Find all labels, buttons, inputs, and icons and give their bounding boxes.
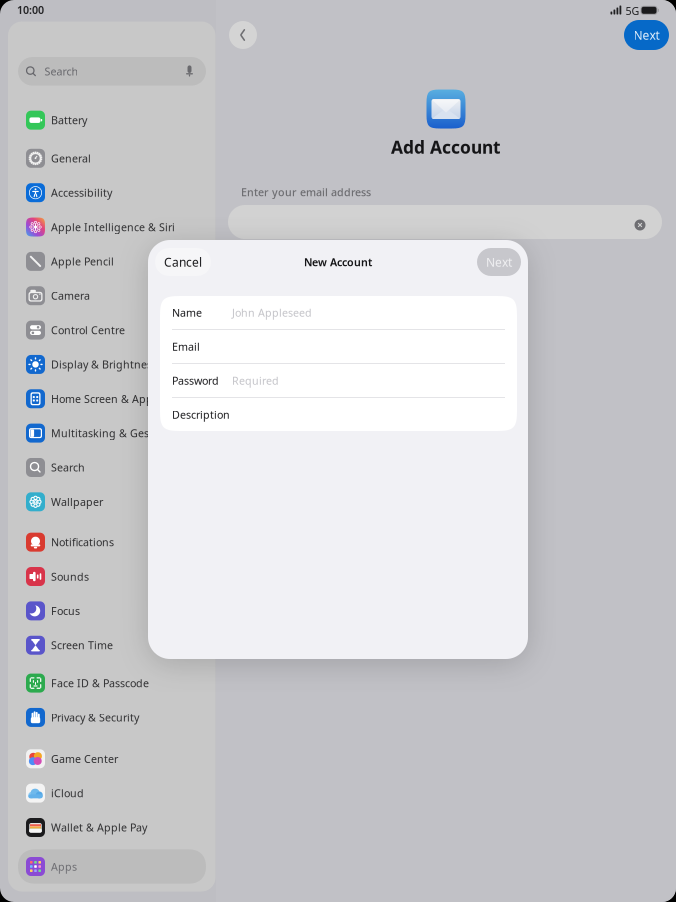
staticText: Control Centre [51, 323, 125, 337]
button[interactable]: Accessibility [18, 175, 206, 210]
button[interactable]: General [18, 141, 206, 176]
button[interactable]: Battery [18, 103, 206, 137]
staticText: Display & Brightness [51, 357, 157, 371]
button[interactable]: Email [160, 330, 517, 363]
staticText: Add Account [391, 135, 501, 158]
staticText: Required [232, 373, 279, 388]
staticText: Focus [51, 604, 80, 618]
button[interactable]: Search [18, 450, 206, 485]
button[interactable]: Sounds [18, 559, 206, 594]
button[interactable]: Next [624, 20, 669, 50]
button[interactable]: Description [160, 398, 517, 431]
staticText: Screen Time [51, 638, 113, 652]
button[interactable]: Multitasking & Gestures [18, 416, 206, 450]
staticText: Multitasking & Gestures [51, 426, 175, 440]
staticText: Apple Intelligence & Siri [51, 220, 175, 234]
button[interactable]: Face ID & Passcode [18, 666, 206, 700]
staticText: Game Center [51, 752, 118, 766]
button[interactable]: Cancel [155, 248, 211, 276]
staticText: Next [486, 254, 512, 270]
button[interactable]: Notifications [18, 525, 206, 559]
button[interactable]: Game Center [18, 742, 206, 776]
staticText: Camera [51, 289, 90, 303]
staticText: Privacy & Security [51, 710, 139, 724]
staticText: Battery [51, 113, 87, 127]
button[interactable]: Apps [18, 849, 206, 884]
button[interactable]: Focus [18, 594, 206, 628]
staticText: Sounds [51, 569, 89, 584]
staticText: 5G [625, 4, 639, 18]
staticText: Email [172, 339, 200, 354]
staticText: General [51, 151, 91, 165]
button[interactable]: Back [229, 21, 257, 49]
staticText: Accessibility [51, 186, 112, 200]
button[interactable]: Home Screen & App Library [18, 382, 206, 416]
staticText: Notifications [51, 535, 114, 549]
staticText: 10:00 [17, 3, 44, 17]
staticText: Home Screen & App Library [51, 392, 191, 406]
button[interactable]: Apple Pencil [18, 244, 206, 279]
staticText: Apple Pencil [51, 254, 114, 268]
button[interactable]: Display & Brightness [18, 347, 206, 382]
button[interactable]: Name [160, 296, 517, 329]
button[interactable]: Wallpaper [18, 485, 206, 519]
button[interactable]: Wallet & Apple Pay [18, 810, 206, 845]
staticText: Search [51, 460, 85, 475]
staticText: Next [633, 27, 659, 43]
button[interactable]: Control Centre [18, 313, 206, 347]
staticText: Enter your email address [241, 185, 371, 199]
staticText: New Account [304, 255, 372, 269]
button[interactable]: Privacy & Security [18, 700, 206, 735]
staticText: Search [44, 64, 78, 78]
button[interactable]: Next [477, 248, 521, 276]
staticText: Wallpaper [51, 495, 103, 509]
staticText: Wallet & Apple Pay [51, 820, 147, 835]
staticText: iCloud [51, 786, 84, 800]
staticText: Password [172, 373, 219, 388]
button[interactable]: Apple Intelligence & Siri [18, 210, 206, 244]
button[interactable]: Password [160, 364, 517, 397]
button[interactable]: Camera [18, 278, 206, 313]
staticText: Apps [51, 859, 77, 874]
staticText: John Appleseed [232, 305, 312, 320]
staticText: Face ID & Passcode [51, 676, 149, 690]
staticText: Description [172, 407, 230, 422]
button[interactable]: Clear text [632, 217, 648, 233]
staticText: Cancel [164, 254, 202, 270]
staticText: Name [172, 305, 202, 320]
button[interactable]: iCloud [18, 776, 206, 810]
button[interactable]: Screen Time [18, 628, 206, 662]
